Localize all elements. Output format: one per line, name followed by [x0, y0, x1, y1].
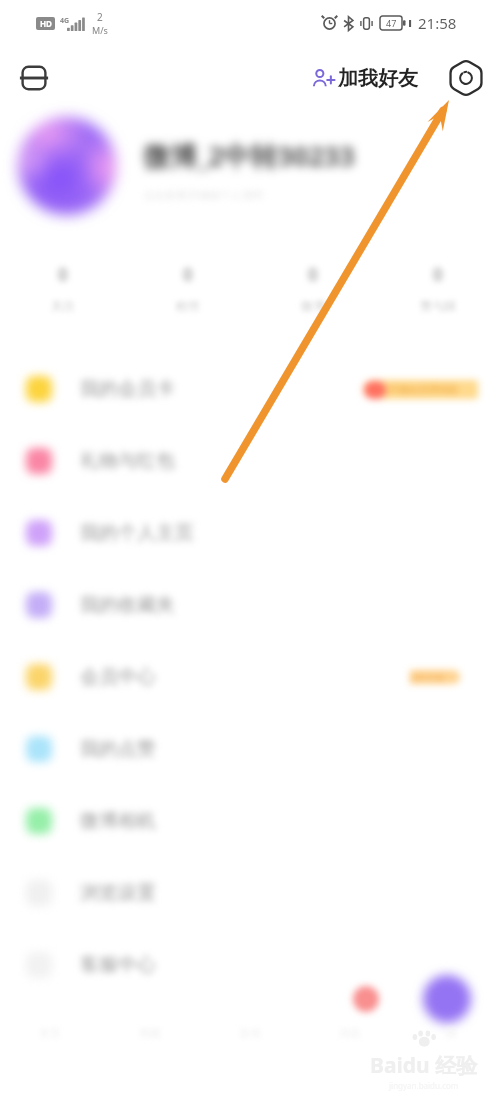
staticText: 我 — [445, 1026, 456, 1040]
staticText: HD — [40, 18, 52, 29]
staticText: 21:58 — [418, 13, 457, 33]
staticText: 我的点赞 — [80, 737, 156, 761]
staticText: 礼物与红包 — [80, 449, 175, 473]
staticText: 微博 — [301, 298, 325, 313]
staticText: 粉丝 — [176, 298, 200, 313]
staticText: Baidu 经验 — [370, 1051, 478, 1080]
button[interactable]: 会员中心 — [0, 641, 500, 713]
staticText: 2 — [97, 10, 103, 24]
staticText: 0 — [183, 263, 193, 286]
staticText: 会员中心 — [80, 665, 156, 689]
staticText: 0 — [58, 263, 68, 286]
button[interactable]: 0 — [125, 222, 250, 353]
button[interactable]: 我的会员卡 — [0, 353, 500, 425]
staticText: 加我好友 — [338, 66, 418, 91]
button[interactable]: 我的点赞 — [0, 713, 500, 785]
button[interactable]: 我的收藏夹 — [0, 569, 500, 641]
button[interactable]: 0 — [0, 222, 125, 353]
button[interactable]: 礼物与红包 — [0, 425, 500, 497]
button[interactable]: 微博相机 — [0, 785, 500, 857]
staticText: 浏览设置 — [80, 881, 156, 905]
button[interactable]: 微博_2中转30233 — [0, 110, 500, 222]
button[interactable]: 消息 — [300, 971, 400, 1111]
button[interactable]: 加我好友 — [308, 60, 422, 97]
button[interactable]: 0 — [250, 222, 375, 353]
staticText: 关注 — [51, 298, 75, 313]
staticText: 4G — [60, 16, 70, 26]
button[interactable]: 浏览设置 — [0, 857, 500, 929]
staticText: 微博相机 — [80, 809, 156, 833]
staticText: M/s — [92, 24, 108, 36]
button[interactable]: 0 — [375, 222, 500, 353]
button[interactable]: Menu — [10, 54, 58, 102]
staticText: 微博_2中转30233 — [143, 137, 355, 174]
button[interactable]: 我 — [400, 971, 500, 1111]
staticText: 我的收藏夹 — [80, 593, 175, 617]
staticText: 赞与踩 — [420, 298, 456, 313]
button[interactable]: 客服中心 — [0, 929, 500, 1001]
staticText: jingyan.baidu.com — [389, 1080, 459, 1091]
button[interactable]: Refresh — [444, 56, 488, 100]
staticText: 0 — [433, 263, 443, 286]
staticText: 47 — [386, 17, 397, 29]
staticText: 我的会员卡 — [80, 377, 175, 401]
staticText: 客服中心 — [80, 953, 156, 977]
staticText: 开通会员享特权 — [388, 383, 458, 396]
staticText: 0 — [308, 263, 318, 286]
button[interactable]: 我的个人主页 — [0, 497, 500, 569]
staticText: 我的个人主页 — [80, 521, 194, 545]
staticText: 立即开通 — [408, 672, 444, 683]
